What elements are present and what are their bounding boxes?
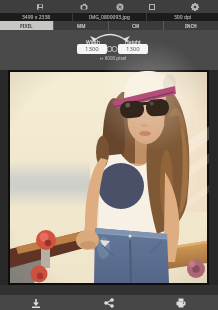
button[interactable]: INCH [164,21,218,30]
staticText: 3499 x 2338 [22,14,51,21]
button[interactable]: 1300 [118,44,148,54]
staticText: 300 dpi [174,14,192,21]
staticText: 1300 [85,45,99,53]
staticText: INCH [185,23,197,29]
staticText: CM [132,23,140,29]
button[interactable] [33,0,47,13]
staticText: Width [82,39,104,46]
button[interactable] [77,0,91,13]
button[interactable] [171,295,191,310]
staticText: IMG_0800093.jpg [89,14,130,21]
button[interactable]: CM [109,21,163,30]
button[interactable] [188,0,202,13]
button[interactable] [113,0,127,13]
button[interactable] [145,0,159,13]
staticText: Height [122,39,144,46]
staticText: PIXEL [20,23,33,29]
staticText: MM [77,23,86,29]
button[interactable] [26,295,46,310]
button[interactable]: 1300 [77,44,107,54]
button[interactable]: PIXEL [0,21,53,30]
button[interactable]: MM [54,21,108,30]
staticText: 1300 [126,45,140,53]
button[interactable] [99,295,119,310]
staticText: ↔ 6000 pixel [85,55,141,61]
